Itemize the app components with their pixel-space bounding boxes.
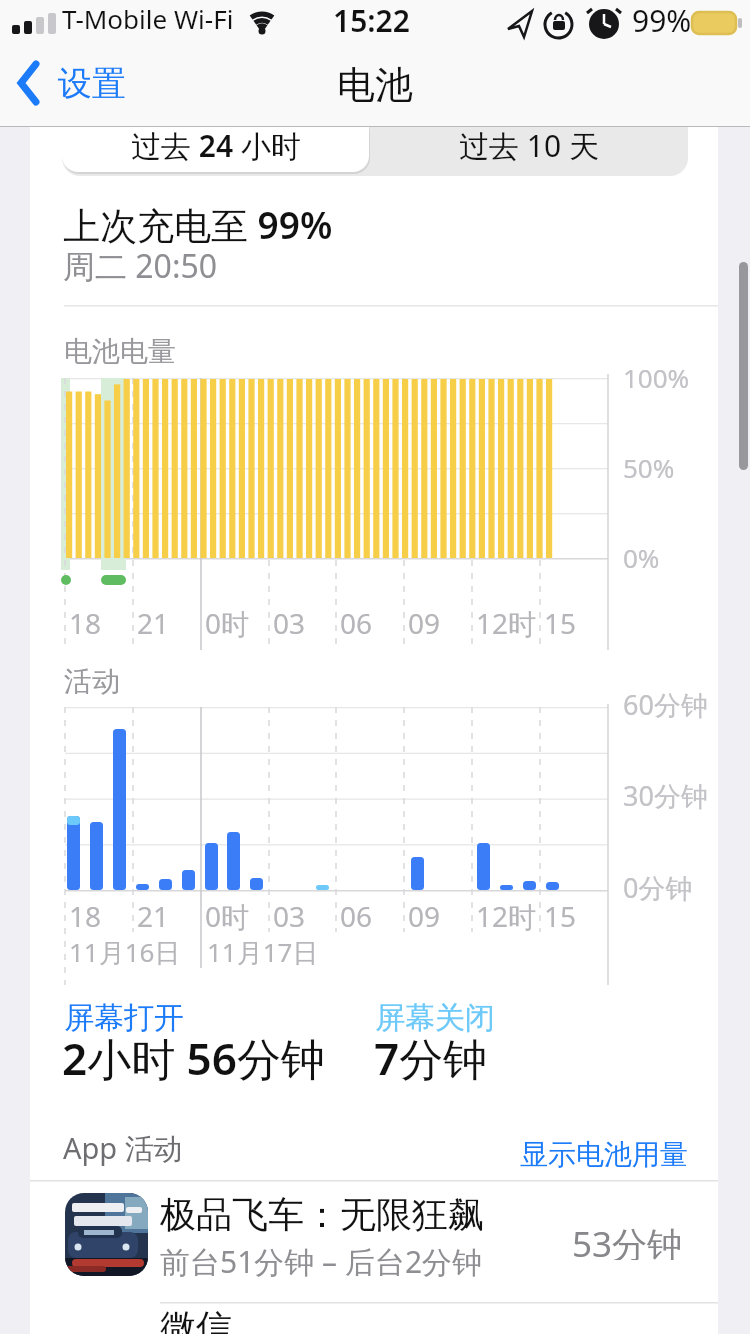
button[interactable] [30,1181,718,1302]
staticText: 09 [408,897,441,935]
staticText: 电池电量 [64,334,176,369]
button[interactable]: 设置 [8,52,148,114]
staticText: 06 [340,897,373,935]
button[interactable]: 过去 10 天 [369,114,688,176]
staticText: 15:22 [333,0,410,41]
button[interactable]: 过去 24 小时 [62,114,369,176]
staticText: 屏幕打开 [64,999,184,1037]
staticText: 7分钟 [374,1028,488,1088]
staticText: 03 [273,604,306,642]
staticText: 0% [623,540,660,575]
button[interactable]: 显示电池用量 [420,1134,688,1174]
staticText: 过去 10 天 [459,125,599,166]
staticText: 微信 [160,1305,232,1334]
staticText: 活动 [64,664,120,699]
staticText: 18 [69,604,102,642]
staticText: T-Mobile Wi-Fi [62,1,234,36]
staticText: 显示电池用量 [520,1137,688,1172]
staticText: 11月17日 [207,934,319,970]
button[interactable] [65,1193,148,1276]
staticText: 30分钟 [623,777,708,814]
staticText: 18 [69,897,102,935]
staticText: 60分钟 [623,686,708,723]
staticText: 21 [137,604,170,642]
staticText: 0时 [205,897,250,935]
staticText: 前台51分钟 – 后台2分钟 [160,1241,483,1282]
staticText: 周二 20:50 [63,244,218,288]
staticText: App 活动 [63,1128,183,1168]
staticText: 屏幕关闭 [375,999,495,1037]
staticText: 15 [544,897,577,935]
staticText: 15 [544,604,577,642]
staticText: 100% [623,360,690,395]
staticText: 设置 [58,62,126,105]
button[interactable] [30,1303,718,1334]
staticText: 50% [623,450,675,485]
staticText: 03 [273,897,306,935]
staticText: 11月16日 [69,934,181,970]
staticText: 12时 [476,897,537,935]
staticText: 99% [632,0,692,41]
staticText: 上次充电至 99% [63,199,333,250]
staticText: 0时 [205,604,250,642]
staticText: 2小时 56分钟 [62,1028,325,1088]
staticText: 21 [137,897,170,935]
staticText: 0分钟 [623,869,693,906]
staticText: 12时 [476,604,537,642]
staticText: 06 [340,604,373,642]
staticText: 09 [408,604,441,642]
staticText: 极品飞车：无限狂飙 [160,1192,484,1237]
staticText: 电池 [337,61,413,109]
staticText: 53分钟 [572,1220,683,1260]
staticText: 过去 24 小时 [131,125,301,166]
